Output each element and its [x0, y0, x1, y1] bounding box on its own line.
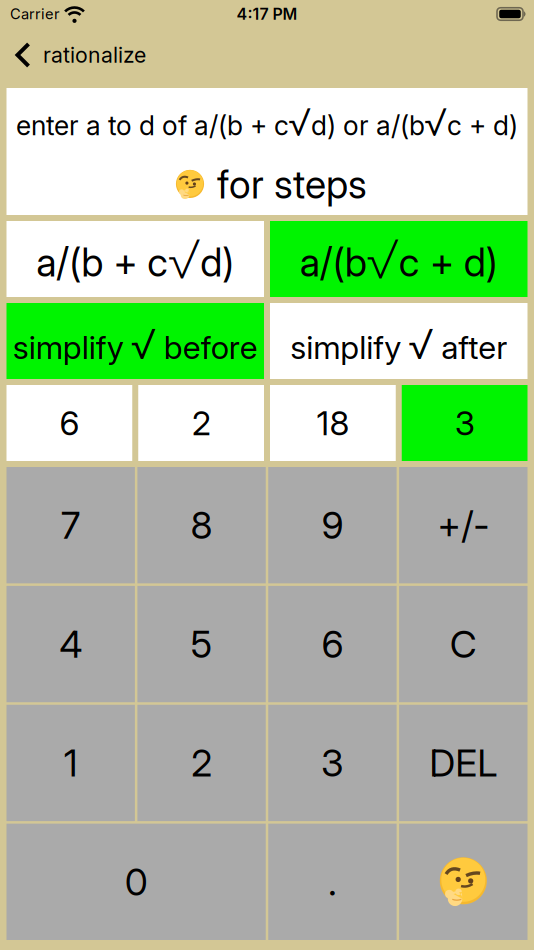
- button[interactable]: 7: [6, 467, 135, 583]
- staticText: 1: [64, 741, 78, 785]
- staticText: 2: [192, 403, 211, 443]
- staticText: C: [450, 622, 477, 666]
- button[interactable]: 3: [402, 385, 528, 461]
- staticText: Carrier: [10, 5, 60, 23]
- button[interactable]: 0: [6, 824, 266, 940]
- button[interactable]: 6: [268, 586, 397, 702]
- staticText: simplify √ after: [290, 320, 507, 368]
- staticText: 4:17 PM: [236, 5, 297, 23]
- button[interactable]: 6: [6, 385, 132, 461]
- staticText: 2: [191, 741, 212, 785]
- staticText: 3: [455, 403, 475, 443]
- button[interactable]: Show steps: [399, 824, 527, 940]
- button[interactable]: simplify √ after: [270, 303, 527, 379]
- button[interactable]: Back: [0, 42, 146, 68]
- staticText: 5: [191, 622, 213, 666]
- staticText: 4: [59, 622, 82, 666]
- button[interactable]: 2: [138, 385, 264, 461]
- button[interactable]: simplify √ before: [6, 303, 264, 379]
- button[interactable]: a/(b√c + d): [270, 221, 527, 297]
- button[interactable]: 18: [270, 385, 396, 461]
- button[interactable]: 9: [268, 467, 397, 583]
- staticText: DEL: [429, 741, 497, 785]
- button[interactable]: +/-: [399, 467, 527, 583]
- staticText: for steps: [217, 162, 367, 207]
- button[interactable]: a/(b + c√d): [6, 221, 264, 297]
- staticText: 9: [321, 503, 343, 547]
- staticText: simplify √ before: [13, 320, 258, 368]
- button[interactable]: DEL: [399, 705, 527, 821]
- staticText: 6: [321, 622, 343, 666]
- staticText: 8: [191, 503, 213, 547]
- staticText: enter a to d of a/(b + c√d) or a/(b√c + …: [16, 100, 518, 144]
- staticText: 3: [321, 741, 344, 785]
- staticText: .: [328, 860, 337, 904]
- button[interactable]: .: [268, 824, 397, 940]
- button[interactable]: 4: [6, 586, 135, 702]
- staticText: 0: [125, 860, 148, 904]
- button[interactable]: 8: [137, 467, 266, 583]
- staticText: a/(b√c + d): [300, 227, 498, 290]
- button[interactable]: 2: [137, 705, 266, 821]
- staticText: 7: [61, 503, 81, 547]
- staticText: a/(b + c√d): [36, 227, 234, 290]
- staticText: rationalize: [43, 42, 146, 68]
- staticText: +/-: [437, 503, 489, 547]
- staticText: 18: [316, 403, 349, 443]
- button[interactable]: C: [399, 586, 527, 702]
- button[interactable]: 1: [6, 705, 135, 821]
- button[interactable]: 3: [268, 705, 397, 821]
- staticText: 6: [59, 403, 79, 443]
- button[interactable]: 5: [137, 586, 266, 702]
